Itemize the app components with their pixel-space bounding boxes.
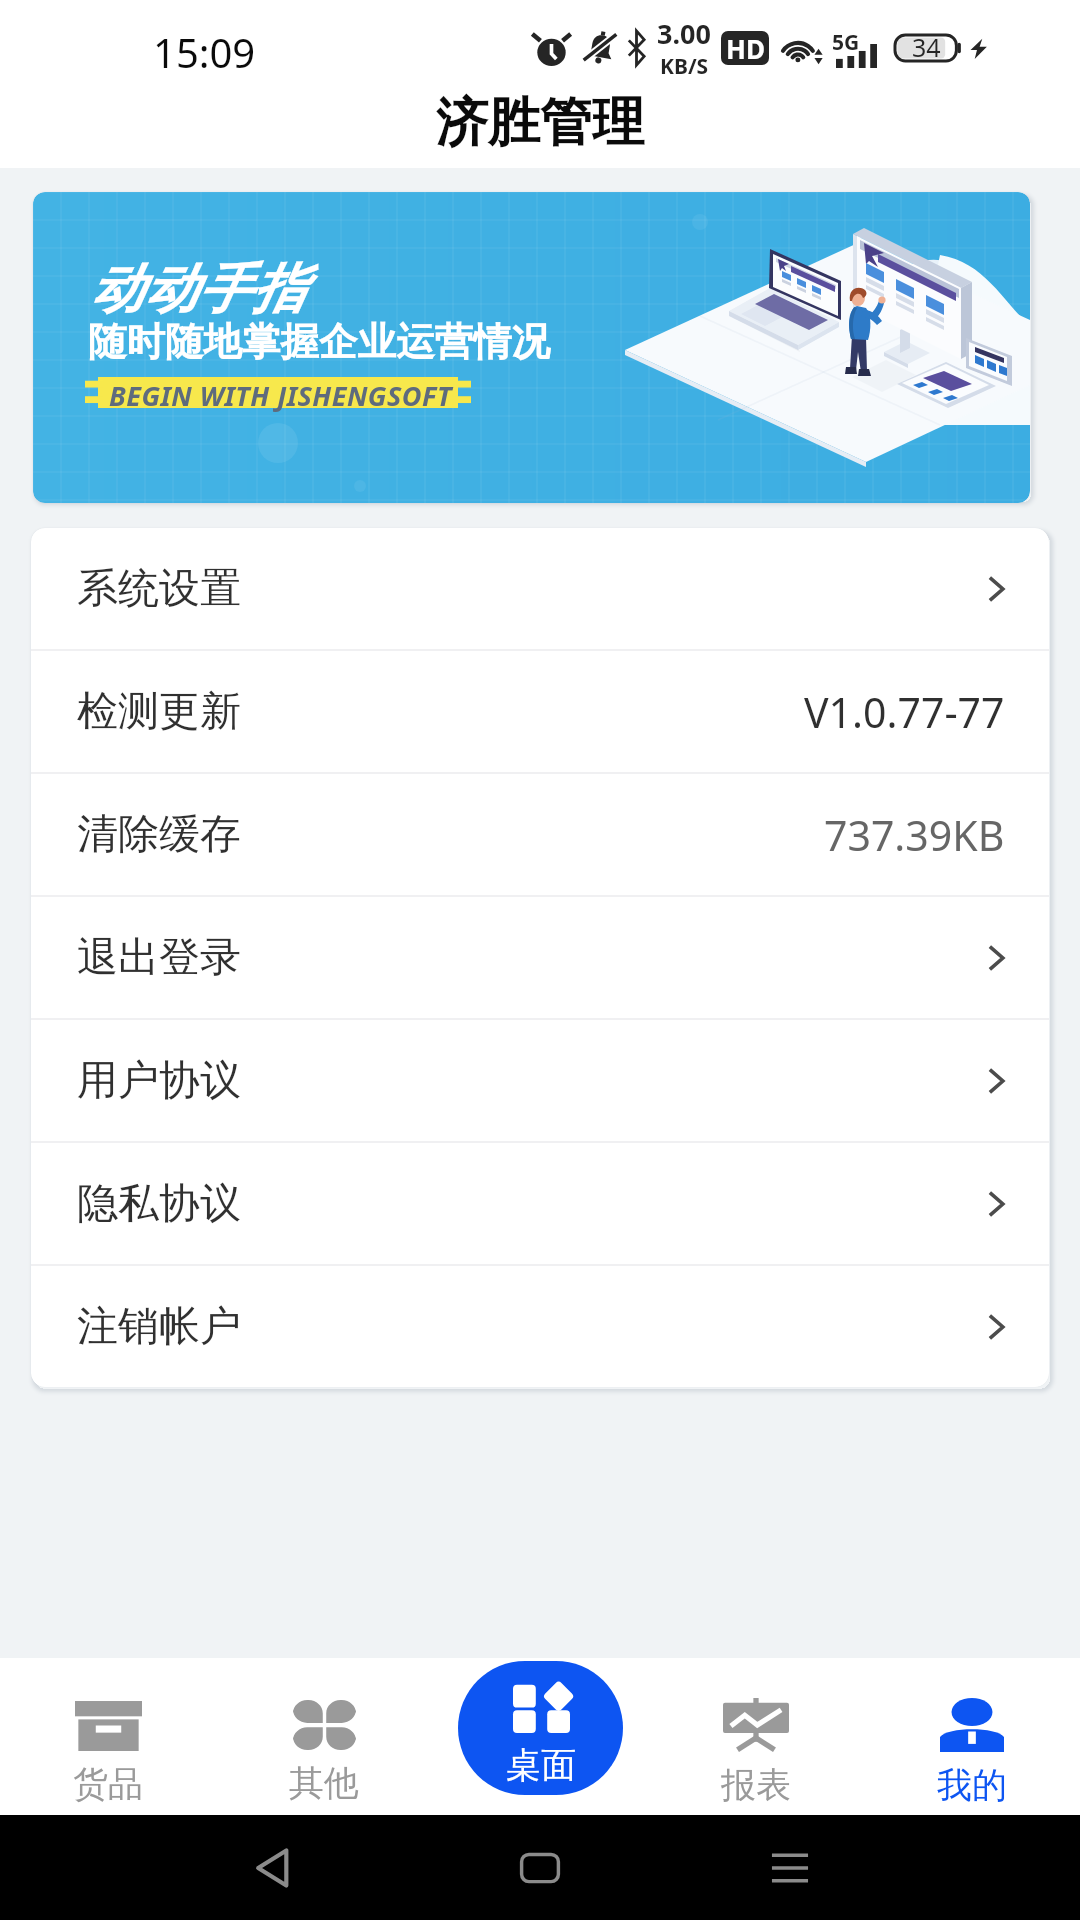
staticText: 注销帐户: [77, 1301, 241, 1353]
button[interactable]: 注销帐户: [31, 1266, 1049, 1387]
button[interactable]: 桌面: [458, 1661, 623, 1795]
button[interactable]: Recents: [768, 1848, 812, 1888]
staticText: 检测更新: [77, 686, 241, 738]
button[interactable]: 隐私协议: [31, 1143, 1049, 1264]
staticText: 清除缓存: [77, 809, 241, 861]
button[interactable]: Back: [252, 1846, 296, 1890]
button[interactable]: 货品: [0, 1658, 216, 1815]
staticText: 济胜管理: [436, 90, 644, 156]
staticText: 报表: [721, 1763, 791, 1807]
staticText: 桌面: [506, 1743, 576, 1787]
button[interactable]: Home: [517, 1848, 563, 1888]
staticText: 用户协议: [77, 1055, 241, 1107]
staticText: 退出登录: [77, 932, 241, 984]
staticText: V1.0.77-77: [804, 684, 1005, 740]
staticText: 隐私协议: [77, 1178, 241, 1230]
staticText: 34: [912, 30, 941, 64]
staticText: 系统设置: [77, 563, 241, 615]
button[interactable]: 系统设置: [31, 528, 1049, 649]
staticText: 3.00: [657, 15, 711, 52]
button[interactable]: 其他: [216, 1658, 432, 1815]
staticText: BEGIN WITH JISHENGSOFT: [109, 377, 452, 414]
button[interactable]: 退出登录: [31, 897, 1049, 1018]
staticText: 随时随地掌握企业运营情况: [88, 318, 550, 367]
staticText: 5G: [832, 28, 860, 57]
staticText: 其他: [289, 1761, 359, 1805]
button[interactable]: 检测更新: [31, 651, 1049, 772]
button[interactable]: 用户协议: [31, 1020, 1049, 1141]
button[interactable]: 动动手指: [33, 192, 1030, 503]
staticText: 我的: [937, 1763, 1007, 1807]
button[interactable]: 我的: [864, 1658, 1080, 1815]
staticText: 动动手指: [89, 256, 305, 323]
staticText: HD: [726, 31, 765, 65]
staticText: 737.39KB: [824, 807, 1005, 863]
staticText: 货品: [73, 1762, 143, 1806]
button[interactable]: 报表: [648, 1658, 864, 1815]
button[interactable]: 清除缓存: [31, 774, 1049, 895]
staticText: 15:09: [153, 25, 256, 79]
staticText: KB/S: [660, 52, 709, 81]
